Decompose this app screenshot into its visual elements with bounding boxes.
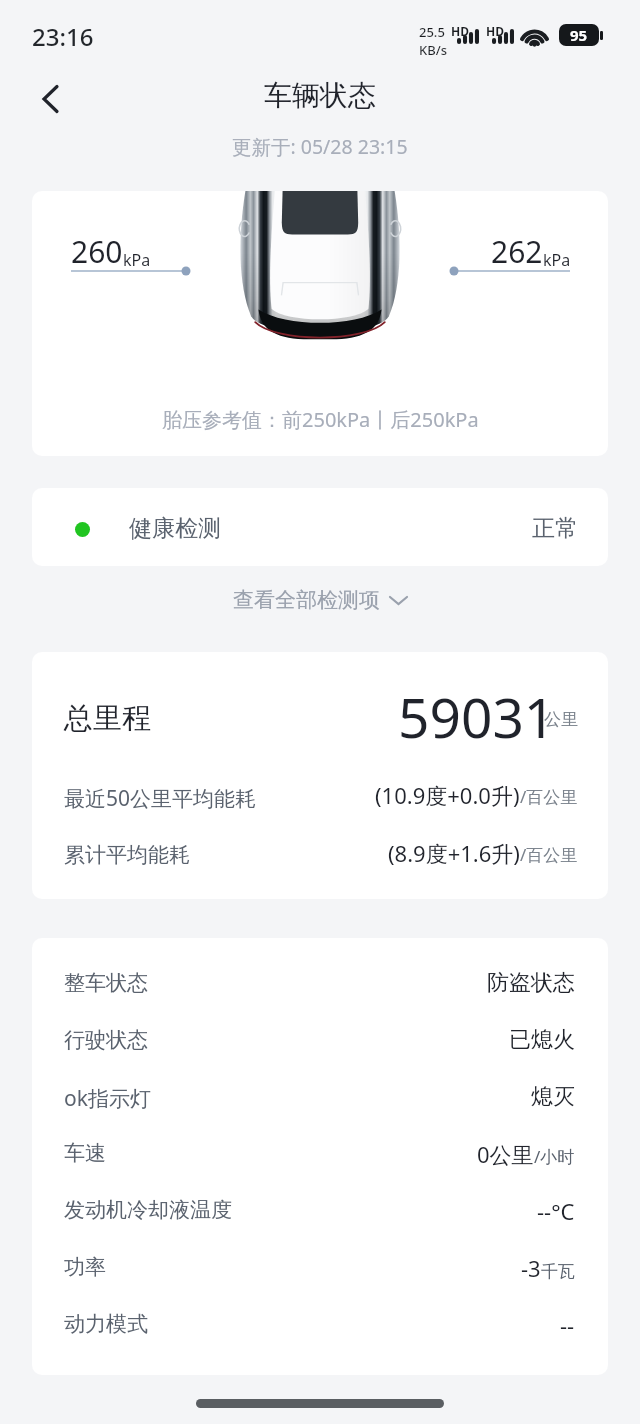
button[interactable]: Back <box>22 70 78 126</box>
staticText: 动力模式 <box>64 1311 148 1337</box>
staticText: 262 <box>491 231 543 272</box>
staticText: 0公里 <box>477 1139 534 1169</box>
staticText: 车辆状态 <box>264 78 376 113</box>
staticText: HD <box>486 23 504 39</box>
staticText: 行驶状态 <box>64 1027 148 1053</box>
staticText: /小时 <box>534 1145 575 1168</box>
staticText: 260 <box>71 231 123 272</box>
staticText: 胎压参考值：前250kPa丨后250kPa <box>162 406 479 433</box>
staticText: kPa <box>123 249 151 271</box>
staticText: 已熄火 <box>509 1026 575 1054</box>
staticText: 防盗状态 <box>487 969 575 997</box>
staticText: 总里程 <box>64 700 151 737</box>
staticText: 公里 <box>544 709 578 730</box>
staticText: -- <box>560 1310 575 1340</box>
staticText: 更新于: 05/28 23:15 <box>232 133 408 160</box>
staticText: 车速 <box>64 1140 106 1166</box>
staticText: 查看全部检测项 <box>233 587 380 613</box>
staticText: 25.5 <box>419 23 445 41</box>
staticText: kPa <box>543 249 571 271</box>
staticText: /百公里 <box>520 785 578 808</box>
staticText: KB/s <box>419 41 448 59</box>
staticText: /百公里 <box>520 843 578 866</box>
staticText: HD <box>451 23 469 39</box>
staticText: 千瓦 <box>541 1261 575 1282</box>
staticText: 发动机冷却液温度 <box>64 1197 232 1223</box>
staticText: 功率 <box>64 1254 106 1280</box>
staticText: --°C <box>537 1196 575 1226</box>
staticText: 正常 <box>532 514 578 543</box>
button[interactable]: 查看全部检测项 <box>0 578 640 622</box>
staticText: 健康检测 <box>129 514 221 543</box>
staticText: 熄灭 <box>531 1083 575 1111</box>
staticText: -3 <box>521 1253 541 1283</box>
staticText: 整车状态 <box>64 970 148 996</box>
staticText: (10.9度+0.0升) <box>375 780 520 810</box>
staticText: 累计平均能耗 <box>64 842 190 868</box>
staticText: ok指示灯 <box>64 1084 151 1113</box>
button[interactable]: 健康检测 <box>32 488 608 566</box>
staticText: 23:16 <box>32 20 94 53</box>
staticText: 95 <box>570 25 588 45</box>
staticText: (8.9度+1.6升) <box>388 838 520 868</box>
staticText: 最近50公里平均能耗 <box>64 784 257 813</box>
staticText: 59031 <box>398 679 556 754</box>
